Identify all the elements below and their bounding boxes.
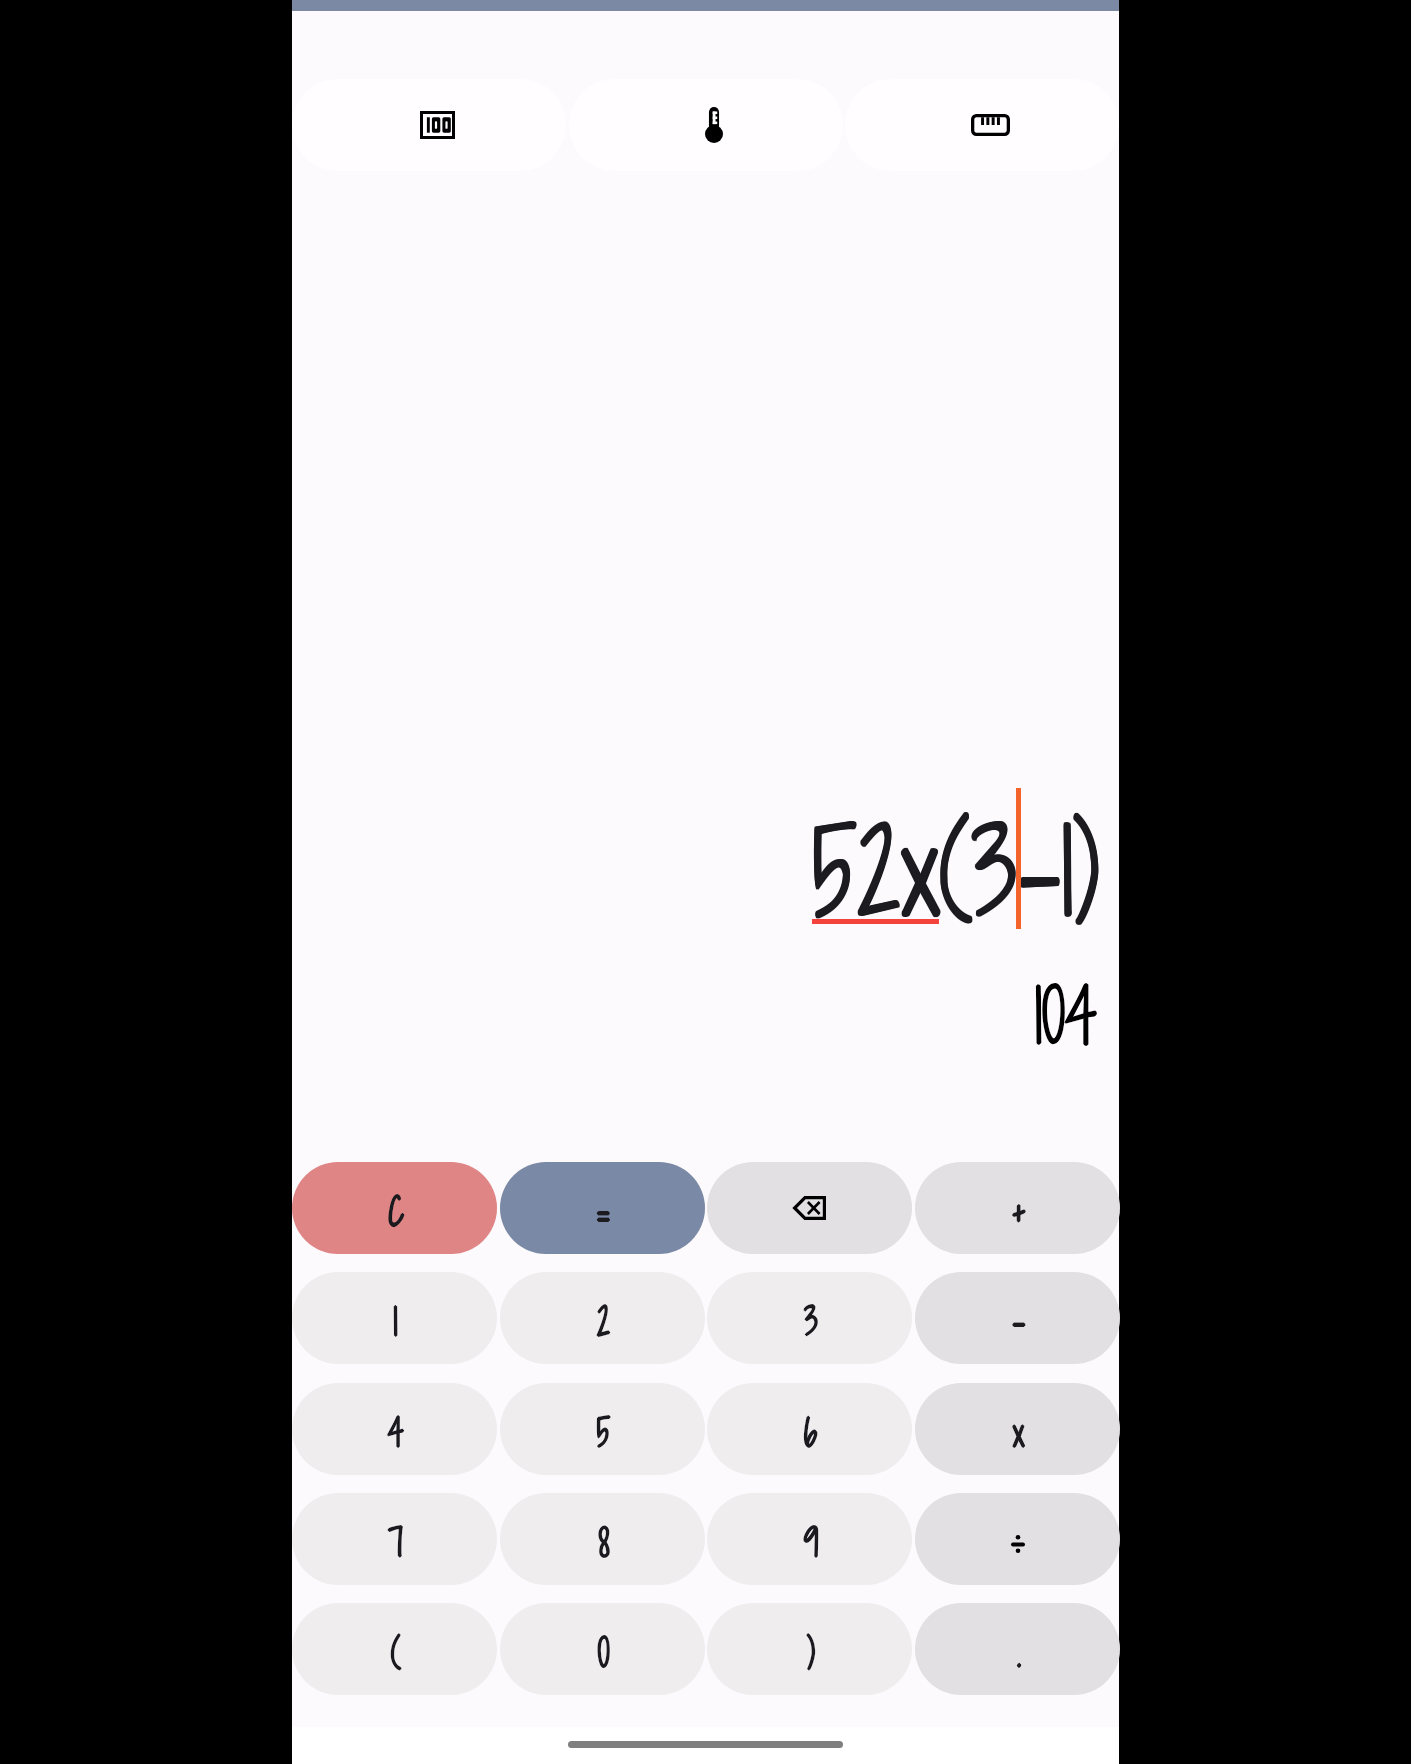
staticText: = bbox=[594, 1188, 611, 1242]
staticText: 6 bbox=[805, 1406, 818, 1460]
staticText: 0 bbox=[598, 1626, 609, 1680]
button[interactable]: ) bbox=[707, 1603, 912, 1695]
staticText: 2 bbox=[597, 1294, 610, 1348]
staticText: C bbox=[388, 1185, 404, 1239]
staticText: 1 bbox=[393, 1294, 397, 1348]
staticText: 4 bbox=[387, 1406, 404, 1460]
button[interactable]: Clear bbox=[292, 1162, 497, 1254]
button[interactable]: 8 bbox=[500, 1493, 705, 1585]
staticText: . bbox=[1017, 1626, 1021, 1680]
staticText: = bbox=[594, 1188, 611, 1242]
staticText: 52x(3-1) bbox=[811, 789, 1099, 954]
staticText: + bbox=[1011, 1185, 1027, 1239]
staticText: ) bbox=[807, 1626, 815, 1680]
button[interactable]: 5 bbox=[500, 1383, 705, 1475]
button[interactable]: Numbers bbox=[292, 79, 566, 171]
staticText: 7 bbox=[388, 1516, 403, 1570]
staticText: 4 bbox=[387, 1407, 404, 1461]
staticText: 8 bbox=[598, 1516, 609, 1570]
staticText: 2 bbox=[597, 1295, 610, 1349]
staticText: ) bbox=[807, 1626, 815, 1680]
staticText: 1 bbox=[393, 1295, 397, 1349]
staticText: ) bbox=[807, 1625, 815, 1679]
button[interactable]: . bbox=[915, 1603, 1120, 1695]
staticText: 6 bbox=[804, 1405, 817, 1459]
staticText: 52x(3-1) bbox=[813, 790, 1101, 955]
staticText: 0 bbox=[597, 1626, 608, 1680]
staticText: + bbox=[1011, 1184, 1027, 1238]
staticText: C bbox=[387, 1185, 403, 1239]
button[interactable]: Divide bbox=[915, 1493, 1120, 1585]
staticText: = bbox=[594, 1188, 611, 1242]
staticText: C bbox=[389, 1185, 405, 1239]
staticText: 9 bbox=[804, 1516, 818, 1570]
staticText: 104 bbox=[1035, 963, 1097, 1067]
staticText: 104 bbox=[1035, 963, 1097, 1067]
button[interactable]: Plus bbox=[915, 1162, 1120, 1254]
staticText: 4 bbox=[387, 1405, 404, 1459]
staticText: + bbox=[1010, 1185, 1026, 1239]
staticText: 2 bbox=[598, 1295, 611, 1349]
staticText: 2 bbox=[597, 1296, 610, 1350]
staticText: ) bbox=[807, 1626, 815, 1680]
button[interactable]: Temperature bbox=[569, 79, 843, 171]
staticText: x bbox=[1014, 1406, 1025, 1460]
button[interactable]: 3 bbox=[707, 1272, 912, 1364]
staticText: 3 bbox=[805, 1295, 819, 1349]
staticText: 7 bbox=[388, 1516, 403, 1570]
staticText: ( bbox=[391, 1626, 401, 1680]
staticText: . bbox=[1017, 1626, 1021, 1680]
staticText: 1 bbox=[393, 1295, 397, 1349]
staticText: + bbox=[1011, 1185, 1027, 1239]
button[interactable]: 1 bbox=[292, 1272, 497, 1364]
staticText: 7 bbox=[389, 1516, 404, 1570]
button[interactable]: 6 bbox=[707, 1383, 912, 1475]
button[interactable]: 4 bbox=[292, 1383, 497, 1475]
staticText: 1 bbox=[394, 1295, 398, 1349]
staticText: . bbox=[1018, 1626, 1022, 1680]
staticText: 4 bbox=[387, 1406, 404, 1460]
staticText: 3 bbox=[804, 1295, 818, 1349]
staticText: 3 bbox=[804, 1295, 818, 1349]
button[interactable]: Backspace bbox=[707, 1162, 912, 1254]
other: Divide bbox=[1011, 1535, 1025, 1553]
button[interactable]: ( bbox=[292, 1603, 497, 1695]
staticText: C bbox=[388, 1185, 404, 1239]
staticText: - bbox=[1012, 1294, 1025, 1348]
staticText: 8 bbox=[598, 1516, 609, 1570]
staticText: . bbox=[1017, 1627, 1021, 1681]
staticText: 6 bbox=[804, 1406, 817, 1460]
button[interactable]: Multiply bbox=[915, 1383, 1120, 1475]
staticText: 3 bbox=[804, 1294, 818, 1348]
staticText: ( bbox=[390, 1626, 400, 1680]
button[interactable]: 0 bbox=[500, 1603, 705, 1695]
staticText: 7 bbox=[388, 1516, 403, 1570]
staticText: 7 bbox=[388, 1517, 403, 1571]
staticText: - bbox=[1012, 1295, 1025, 1349]
staticText: = bbox=[594, 1189, 611, 1243]
staticText: 1 bbox=[393, 1296, 397, 1350]
staticText: 52x(3-1) bbox=[813, 789, 1101, 954]
staticText: 4 bbox=[386, 1406, 403, 1460]
staticText: 52x(3-1) bbox=[812, 788, 1100, 953]
staticText: 9 bbox=[804, 1515, 818, 1569]
staticText: x bbox=[1013, 1406, 1024, 1460]
staticText: 9 bbox=[804, 1516, 818, 1570]
staticText: C bbox=[388, 1185, 404, 1239]
button[interactable]: 9 bbox=[707, 1493, 912, 1585]
button[interactable]: Length bbox=[845, 79, 1119, 171]
staticText: 2 bbox=[597, 1295, 610, 1349]
staticText: 9 bbox=[804, 1516, 818, 1570]
button[interactable]: 2 bbox=[500, 1272, 705, 1364]
button[interactable]: Equals bbox=[500, 1162, 705, 1254]
button[interactable]: 7 bbox=[292, 1493, 497, 1585]
staticText: ( bbox=[391, 1626, 401, 1680]
staticText: = bbox=[593, 1188, 610, 1242]
button[interactable]: Minus bbox=[915, 1272, 1120, 1364]
staticText: 3 bbox=[803, 1295, 817, 1349]
staticText: 1 bbox=[393, 1295, 397, 1349]
staticText: 2 bbox=[596, 1295, 609, 1349]
staticText: C bbox=[388, 1185, 404, 1239]
staticText: 5 bbox=[597, 1406, 610, 1460]
staticText: 7 bbox=[388, 1516, 403, 1570]
